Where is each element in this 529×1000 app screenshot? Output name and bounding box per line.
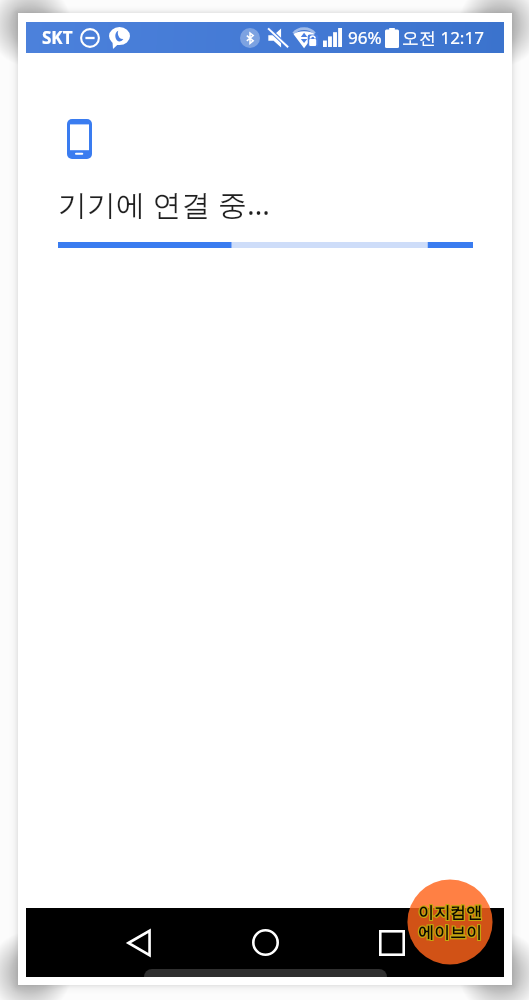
button[interactable]: Recent apps	[366, 908, 418, 977]
staticText: 96%	[348, 26, 382, 49]
staticText: 이지컴앤	[418, 903, 482, 923]
staticText: 에이브이	[418, 923, 482, 943]
button[interactable]: Home	[239, 908, 291, 977]
staticText: 오전 12:17	[402, 26, 484, 49]
staticText: 이지컴앤	[418, 903, 482, 923]
staticText: 기기에 연결 중…	[58, 184, 271, 224]
staticText: 에이브이	[418, 923, 482, 943]
button[interactable]: Back	[113, 908, 165, 977]
staticText: SKT	[42, 26, 73, 49]
